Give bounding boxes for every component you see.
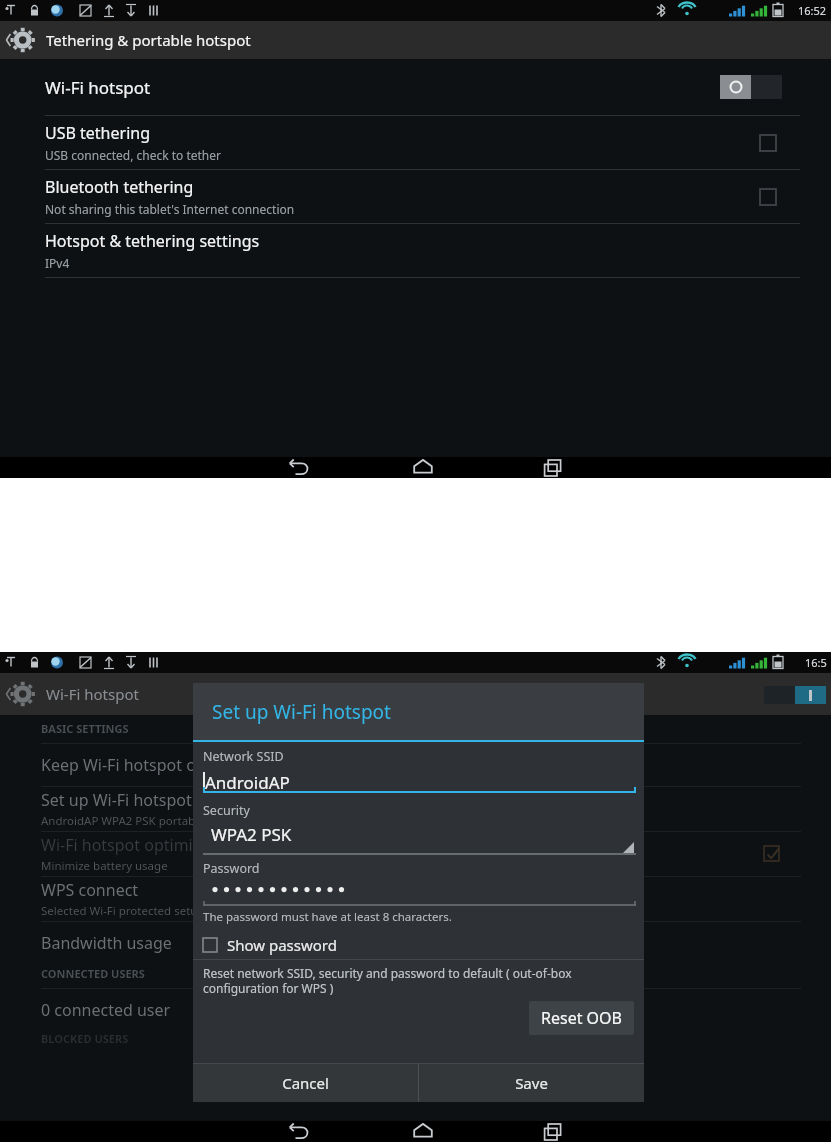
button[interactable]: Wi-Fi hotspot optimization bbox=[0, 832, 831, 876]
button[interactable]: Wi-Fi hotspot off bbox=[720, 75, 782, 99]
staticText: Wi-Fi hotspot bbox=[46, 684, 139, 704]
staticText: AndroidAP WPA2 PSK portable hotspot bbox=[41, 813, 250, 829]
staticText: Password bbox=[203, 860, 260, 877]
button[interactable]: Save bbox=[419, 1064, 644, 1102]
staticText: 0 connected user bbox=[41, 999, 171, 1021]
button[interactable]: Home bbox=[358, 457, 488, 478]
button[interactable]: WPA2 PSK bbox=[203, 823, 636, 855]
staticText: Selected Wi-Fi protected setup bbox=[41, 903, 205, 919]
button[interactable]: Bluetooth tethering bbox=[0, 170, 831, 223]
button[interactable]: Up bbox=[0, 673, 139, 715]
staticText: Wi-Fi hotspot optimization bbox=[41, 834, 239, 856]
button[interactable]: USB tethering bbox=[0, 116, 831, 169]
staticText: CONNECTED USERS bbox=[41, 966, 145, 981]
button[interactable]: Back bbox=[240, 457, 358, 478]
staticText: AndroidAP bbox=[205, 771, 290, 794]
staticText: WPS connect bbox=[41, 879, 139, 901]
button[interactable]: AndroidAP bbox=[203, 770, 636, 794]
button[interactable]: WPS connect bbox=[0, 877, 831, 921]
button[interactable]: Home bbox=[358, 1121, 488, 1142]
staticText: Reset network SSID, security and passwor… bbox=[203, 965, 632, 996]
button[interactable]: Bandwidth usage bbox=[0, 922, 831, 964]
button[interactable]: Keep Wi-Fi hotspot on bbox=[0, 744, 831, 786]
button[interactable]: Recent apps bbox=[488, 1121, 618, 1142]
button[interactable]: Reset OOB bbox=[529, 1001, 634, 1035]
button[interactable]: 0 connected user bbox=[0, 989, 831, 1031]
button[interactable] bbox=[203, 877, 636, 907]
staticText: BASIC SETTINGS bbox=[41, 721, 129, 736]
staticText: Show password bbox=[227, 935, 337, 955]
staticText: Save bbox=[515, 1073, 548, 1093]
button[interactable]: Wi-Fi hotspot bbox=[0, 59, 831, 115]
staticText: Not sharing this tablet's Internet conne… bbox=[45, 201, 295, 217]
staticText: 16:5 bbox=[805, 655, 827, 670]
staticText: Cancel bbox=[282, 1073, 329, 1093]
staticText: Bluetooth tethering bbox=[45, 176, 194, 198]
staticText: Network SSID bbox=[203, 748, 284, 765]
staticText: WPA2 PSK bbox=[211, 823, 292, 846]
button[interactable]: Hotspot & tethering settings bbox=[0, 224, 831, 277]
staticText: Minimize battery usage bbox=[41, 858, 168, 874]
button[interactable]: Back bbox=[240, 1121, 358, 1142]
staticText: USB connected, check to tether bbox=[45, 147, 221, 163]
staticText: 16:52 bbox=[798, 3, 827, 18]
staticText: Set up Wi-Fi hotspot bbox=[212, 699, 391, 725]
button[interactable]: Set up Wi-Fi hotspot bbox=[0, 787, 831, 831]
button[interactable]: USB tethering checkbox bbox=[755, 130, 781, 156]
button[interactable]: Bluetooth tethering checkbox bbox=[755, 184, 781, 210]
staticText: The password must have at least 8 charac… bbox=[203, 909, 452, 925]
button[interactable]: Show password bbox=[203, 931, 644, 959]
staticText: Tethering & portable hotspot bbox=[46, 30, 251, 50]
staticText: Security bbox=[203, 802, 250, 819]
staticText: Wi-Fi hotspot bbox=[45, 76, 151, 99]
staticText: USB tethering bbox=[45, 122, 150, 144]
staticText: Reset OOB bbox=[541, 1007, 622, 1029]
button[interactable]: Recent apps bbox=[488, 457, 618, 478]
staticText: Keep Wi-Fi hotspot on bbox=[41, 754, 206, 776]
button[interactable]: Up bbox=[0, 21, 831, 59]
staticText: Set up Wi-Fi hotspot bbox=[41, 789, 192, 811]
staticText: Hotspot & tethering settings bbox=[45, 230, 260, 252]
button[interactable]: Wi-Fi hotspot on bbox=[764, 686, 826, 704]
staticText: IPv4 bbox=[45, 255, 70, 271]
staticText: Bandwidth usage bbox=[41, 932, 172, 954]
staticText: BLOCKED USERS bbox=[41, 1031, 129, 1046]
button[interactable]: Cancel bbox=[193, 1064, 418, 1102]
